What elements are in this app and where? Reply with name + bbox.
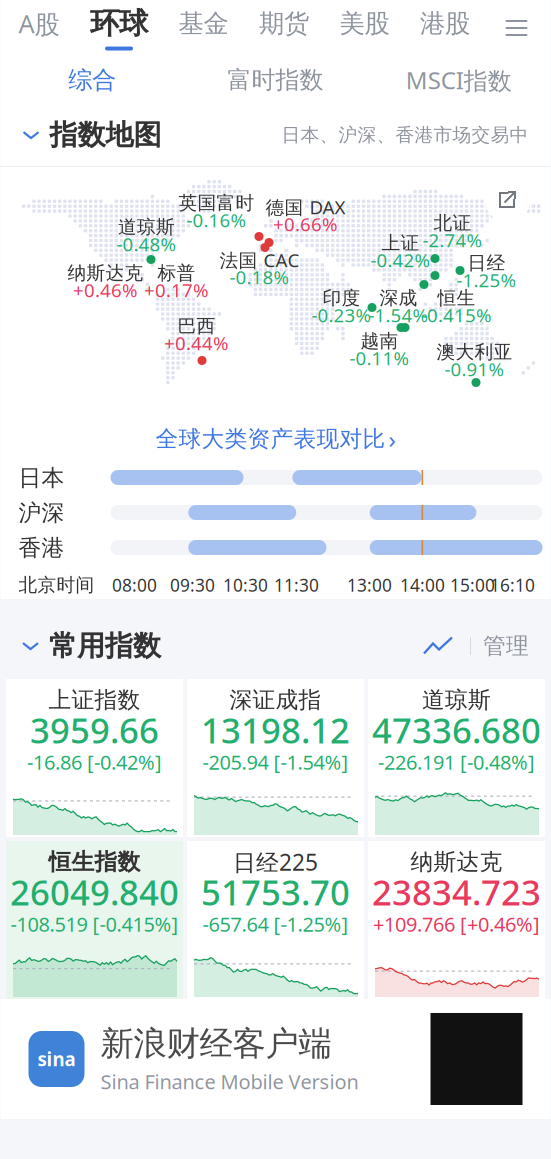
staticText: MSCI指数 bbox=[406, 64, 512, 96]
staticText: 期货 bbox=[259, 8, 309, 39]
staticText: 沪深 bbox=[18, 499, 64, 527]
button[interactable]: MSCI指数 bbox=[367, 56, 550, 104]
staticText: 北京时间 bbox=[18, 573, 94, 596]
staticText: 日经 bbox=[467, 251, 505, 274]
staticText: +0.17% bbox=[144, 278, 209, 302]
button[interactable]: 日经225 bbox=[187, 841, 364, 999]
staticText: 英国富时 bbox=[178, 191, 254, 214]
button[interactable]: 纳斯达克 bbox=[368, 841, 545, 999]
staticText: 恒生 bbox=[437, 286, 475, 309]
staticText: -2.74% bbox=[422, 228, 482, 252]
staticText: 16:10 bbox=[490, 573, 535, 596]
staticText: +109.766 [+0.46%] bbox=[373, 911, 540, 937]
staticText: 北证 bbox=[433, 211, 471, 234]
staticText: 26049.840 bbox=[10, 869, 179, 915]
staticText: -0.23% bbox=[311, 303, 371, 327]
staticText: +0.46% bbox=[73, 278, 138, 302]
staticText: -1.25% bbox=[456, 268, 516, 292]
staticText: -205.94 [-1.54%] bbox=[202, 749, 348, 775]
staticText: -0.11% bbox=[349, 346, 409, 370]
staticText: 纳斯达克 bbox=[410, 848, 502, 876]
button[interactable]: 上证指数 bbox=[6, 679, 183, 837]
staticText: -226.191 [-0.48%] bbox=[378, 749, 535, 775]
staticText: A股 bbox=[18, 7, 59, 40]
staticText: 09:30 bbox=[170, 573, 215, 596]
staticText: 德国 DAX bbox=[265, 195, 345, 219]
staticText: 日本 bbox=[18, 464, 64, 492]
staticText: 恒生指数 bbox=[48, 848, 140, 876]
staticText: 指数地图 bbox=[49, 118, 161, 152]
button[interactable]: 环球 bbox=[90, 5, 148, 50]
staticText: -0.42% bbox=[370, 248, 430, 272]
staticText: 深成 bbox=[379, 286, 417, 309]
staticText: 美股 bbox=[339, 8, 389, 39]
staticText: sina bbox=[37, 1047, 75, 1071]
button[interactable]: 综合 bbox=[0, 56, 184, 104]
staticText: › bbox=[388, 423, 395, 455]
staticText: 15:00 bbox=[450, 573, 495, 596]
staticText: 上证 bbox=[381, 231, 419, 254]
staticText: -0.415% bbox=[421, 303, 492, 327]
button[interactable]: 恒生指数 bbox=[6, 841, 183, 999]
button[interactable]: 港股 bbox=[420, 8, 470, 48]
staticText: 23834.723 bbox=[372, 869, 541, 915]
staticText: 综合 bbox=[68, 65, 116, 95]
staticText: 澳大利亚 bbox=[436, 340, 512, 363]
staticText: 基金 bbox=[178, 8, 228, 39]
button[interactable]: 走势图 bbox=[418, 631, 458, 660]
staticText: 纳斯达克 bbox=[67, 261, 143, 284]
button[interactable]: 深证成指 bbox=[187, 679, 364, 837]
button[interactable]: A股 bbox=[18, 7, 59, 49]
staticText: 香港 bbox=[18, 534, 64, 562]
staticText: Sina Finance Mobile Version bbox=[100, 1068, 358, 1095]
staticText: -108.519 [-0.415%] bbox=[10, 911, 178, 937]
staticText: 管理 bbox=[483, 632, 529, 660]
staticText: 上证指数 bbox=[48, 686, 140, 714]
staticText: 常用指数 bbox=[49, 629, 161, 663]
staticText: 港股 bbox=[420, 8, 470, 39]
staticText: 47336.680 bbox=[372, 707, 541, 753]
button[interactable]: 道琼斯 bbox=[368, 679, 545, 837]
staticText: -0.48% bbox=[116, 232, 176, 256]
button[interactable]: 美股 bbox=[339, 8, 389, 48]
staticText: 14:00 bbox=[400, 573, 445, 596]
staticText: 越南 bbox=[360, 329, 398, 352]
button[interactable]: 更多频道 bbox=[500, 8, 532, 48]
staticText: 巴西 bbox=[177, 314, 215, 337]
button[interactable]: 全球大类资产表现对比 bbox=[0, 424, 550, 454]
staticText: 13:00 bbox=[347, 573, 392, 596]
staticText: -0.91% bbox=[444, 357, 504, 381]
staticText: 日经225 bbox=[233, 847, 318, 877]
staticText: -0.18% bbox=[229, 265, 289, 289]
staticText: -16.86 [-0.42%] bbox=[27, 749, 162, 775]
staticText: 环球 bbox=[90, 5, 148, 41]
button[interactable]: 管理 bbox=[483, 632, 529, 660]
staticText: -0.16% bbox=[186, 208, 246, 232]
staticText: -657.64 [-1.25%] bbox=[202, 911, 348, 937]
staticText: 法国 CAC bbox=[219, 248, 299, 272]
staticText: 道琼斯 bbox=[118, 215, 175, 238]
staticText: 富时指数 bbox=[227, 65, 323, 95]
button[interactable]: 富时指数 bbox=[184, 56, 367, 104]
staticText: 51753.70 bbox=[201, 869, 350, 915]
staticText: 深证成指 bbox=[229, 686, 321, 714]
staticText: 标普 bbox=[157, 261, 195, 284]
button[interactable]: 期货 bbox=[259, 8, 309, 48]
staticText: 10:30 bbox=[223, 573, 268, 596]
staticText: 11:30 bbox=[274, 573, 319, 596]
staticText: 全球大类资产表现对比 bbox=[155, 425, 385, 453]
staticText: -1.54% bbox=[368, 303, 428, 327]
staticText: 道琼斯 bbox=[422, 686, 491, 714]
staticText: 日本、沪深、香港市场交易中 bbox=[281, 123, 528, 146]
staticText: +0.66% bbox=[273, 212, 338, 236]
button[interactable]: 全屏查看 bbox=[484, 176, 530, 222]
staticText: 印度 bbox=[322, 286, 360, 309]
staticText: 3959.66 bbox=[30, 707, 159, 753]
staticText: 08:00 bbox=[112, 573, 157, 596]
staticText: 13198.12 bbox=[201, 707, 350, 753]
button[interactable]: 基金 bbox=[178, 8, 228, 48]
staticText: +0.44% bbox=[164, 331, 229, 355]
staticText: 新浪财经客户端 bbox=[100, 1023, 331, 1064]
